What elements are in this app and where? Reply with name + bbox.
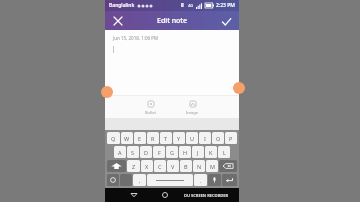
staticText: K: [209, 149, 213, 156]
staticText: D: [144, 149, 149, 156]
button[interactable]: Y: [173, 132, 185, 144]
button[interactable]: Recorder widget: [101, 86, 113, 98]
staticText: 4G: [188, 3, 194, 8]
button[interactable]: Bullet: [141, 98, 160, 117]
button[interactable]: A: [114, 146, 126, 158]
button[interactable]: U: [186, 132, 198, 144]
button[interactable]: M: [206, 160, 218, 172]
staticText: J: [197, 149, 199, 156]
staticText: S: [131, 149, 135, 156]
staticText: N: [197, 163, 202, 170]
staticText: ,: [139, 177, 141, 184]
staticText: Z: [132, 163, 136, 170]
button[interactable]: .: [194, 174, 207, 186]
staticText: Y: [177, 135, 181, 142]
button[interactable]: L: [218, 146, 230, 158]
staticText: U: [190, 135, 195, 142]
staticText: W: [124, 135, 130, 142]
button[interactable]: X: [141, 160, 153, 172]
staticText: T: [164, 135, 168, 142]
button[interactable]: Close: [110, 13, 126, 29]
button[interactable]: Z: [127, 160, 140, 172]
staticText: DU SCREEN RECORDER: [184, 193, 229, 198]
button[interactable]: J: [192, 146, 204, 158]
button[interactable]: R: [147, 132, 159, 144]
button[interactable]: S: [127, 146, 139, 158]
button[interactable]: Voice input: [208, 174, 221, 186]
button[interactable]: Q: [107, 132, 120, 144]
staticText: Image: [186, 110, 199, 115]
button[interactable]: P: [225, 132, 237, 144]
button[interactable]: K: [205, 146, 217, 158]
button[interactable]: Enter: [222, 174, 237, 186]
button[interactable]: W: [121, 132, 133, 144]
staticText: I: [204, 135, 206, 142]
staticText: .: [200, 177, 202, 184]
staticText: V: [171, 163, 175, 170]
button[interactable]: Shift: [107, 160, 126, 172]
button[interactable]: [147, 174, 193, 186]
staticText: O: [216, 135, 221, 142]
staticText: Edit note: [157, 16, 187, 26]
staticText: C: [158, 163, 162, 170]
button[interactable]: Home: [159, 189, 171, 201]
staticText: H: [183, 149, 188, 156]
button[interactable]: D: [140, 146, 152, 158]
button[interactable]: Recorder widget: [233, 82, 245, 94]
staticText: E: [138, 135, 142, 142]
button[interactable]: Back: [128, 189, 140, 201]
staticText: Bullet: [145, 110, 156, 115]
staticText: P: [229, 135, 233, 142]
staticText: Banglalink: [109, 2, 135, 9]
button[interactable]: C: [154, 160, 166, 172]
button[interactable]: H: [179, 146, 191, 158]
button[interactable]: T: [160, 132, 172, 144]
button[interactable]: N: [193, 160, 205, 172]
button[interactable]: Image: [182, 98, 203, 117]
staticText: R: [151, 135, 155, 142]
button[interactable]: Emoji: [107, 174, 119, 186]
button[interactable]: ,: [133, 174, 146, 186]
button[interactable]: F: [153, 146, 165, 158]
button[interactable]: O: [212, 132, 224, 144]
staticText: F: [158, 149, 161, 156]
button[interactable]: G: [166, 146, 178, 158]
button[interactable]: I: [199, 132, 211, 144]
staticText: M: [210, 163, 215, 170]
staticText: L: [223, 149, 226, 156]
staticText: G: [170, 149, 175, 156]
staticText: A: [118, 149, 122, 156]
staticText: X: [145, 163, 149, 170]
staticText: Q: [111, 135, 116, 142]
button[interactable]: B: [180, 160, 192, 172]
button[interactable]: Jun 15, 2018, 1:06 PM: [113, 35, 233, 95]
button[interactable]: V: [167, 160, 179, 172]
staticText: 2:23 PM: [216, 2, 235, 9]
staticText: B: [184, 163, 188, 170]
button[interactable]: Backspace: [219, 160, 237, 172]
button[interactable]: E: [134, 132, 146, 144]
button[interactable]: Save: [218, 13, 234, 29]
staticText: Jun 15, 2018, 1:06 PM: [113, 35, 159, 41]
